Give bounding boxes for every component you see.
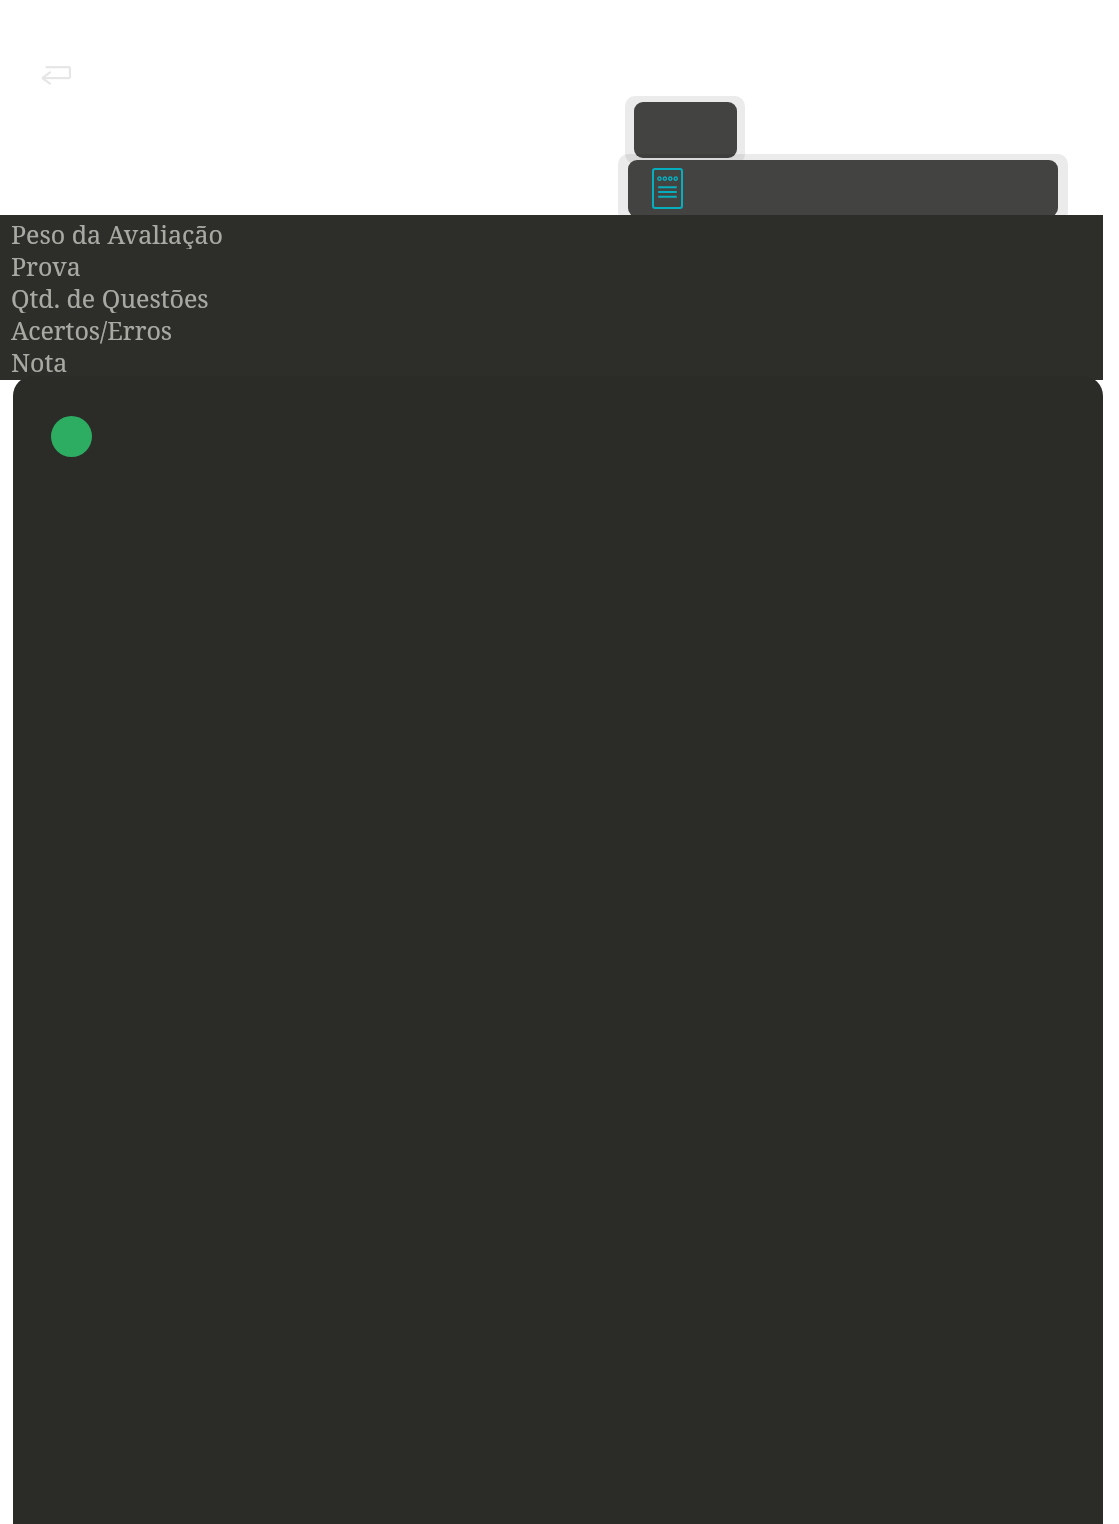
staticText: Acertos/Erros [11,313,173,345]
button[interactable]: Prova [11,249,81,281]
staticText: Nota [11,345,68,377]
button[interactable]: Back [33,57,75,91]
button[interactable]: Nota [11,345,68,377]
button[interactable]: Status [51,416,92,457]
staticText: Peso da Avaliação [11,217,223,249]
other: Lista de questões [652,168,683,209]
button[interactable]: Acertos/Erros [11,313,173,345]
button[interactable]: Qtd. de Questões [11,281,209,313]
button[interactable]: Lista de questões [628,160,1058,217]
staticText: Prova [11,249,81,281]
button[interactable] [634,102,737,158]
button[interactable]: Peso da Avaliação [11,217,223,249]
staticText: Qtd. de Questões [11,281,209,313]
